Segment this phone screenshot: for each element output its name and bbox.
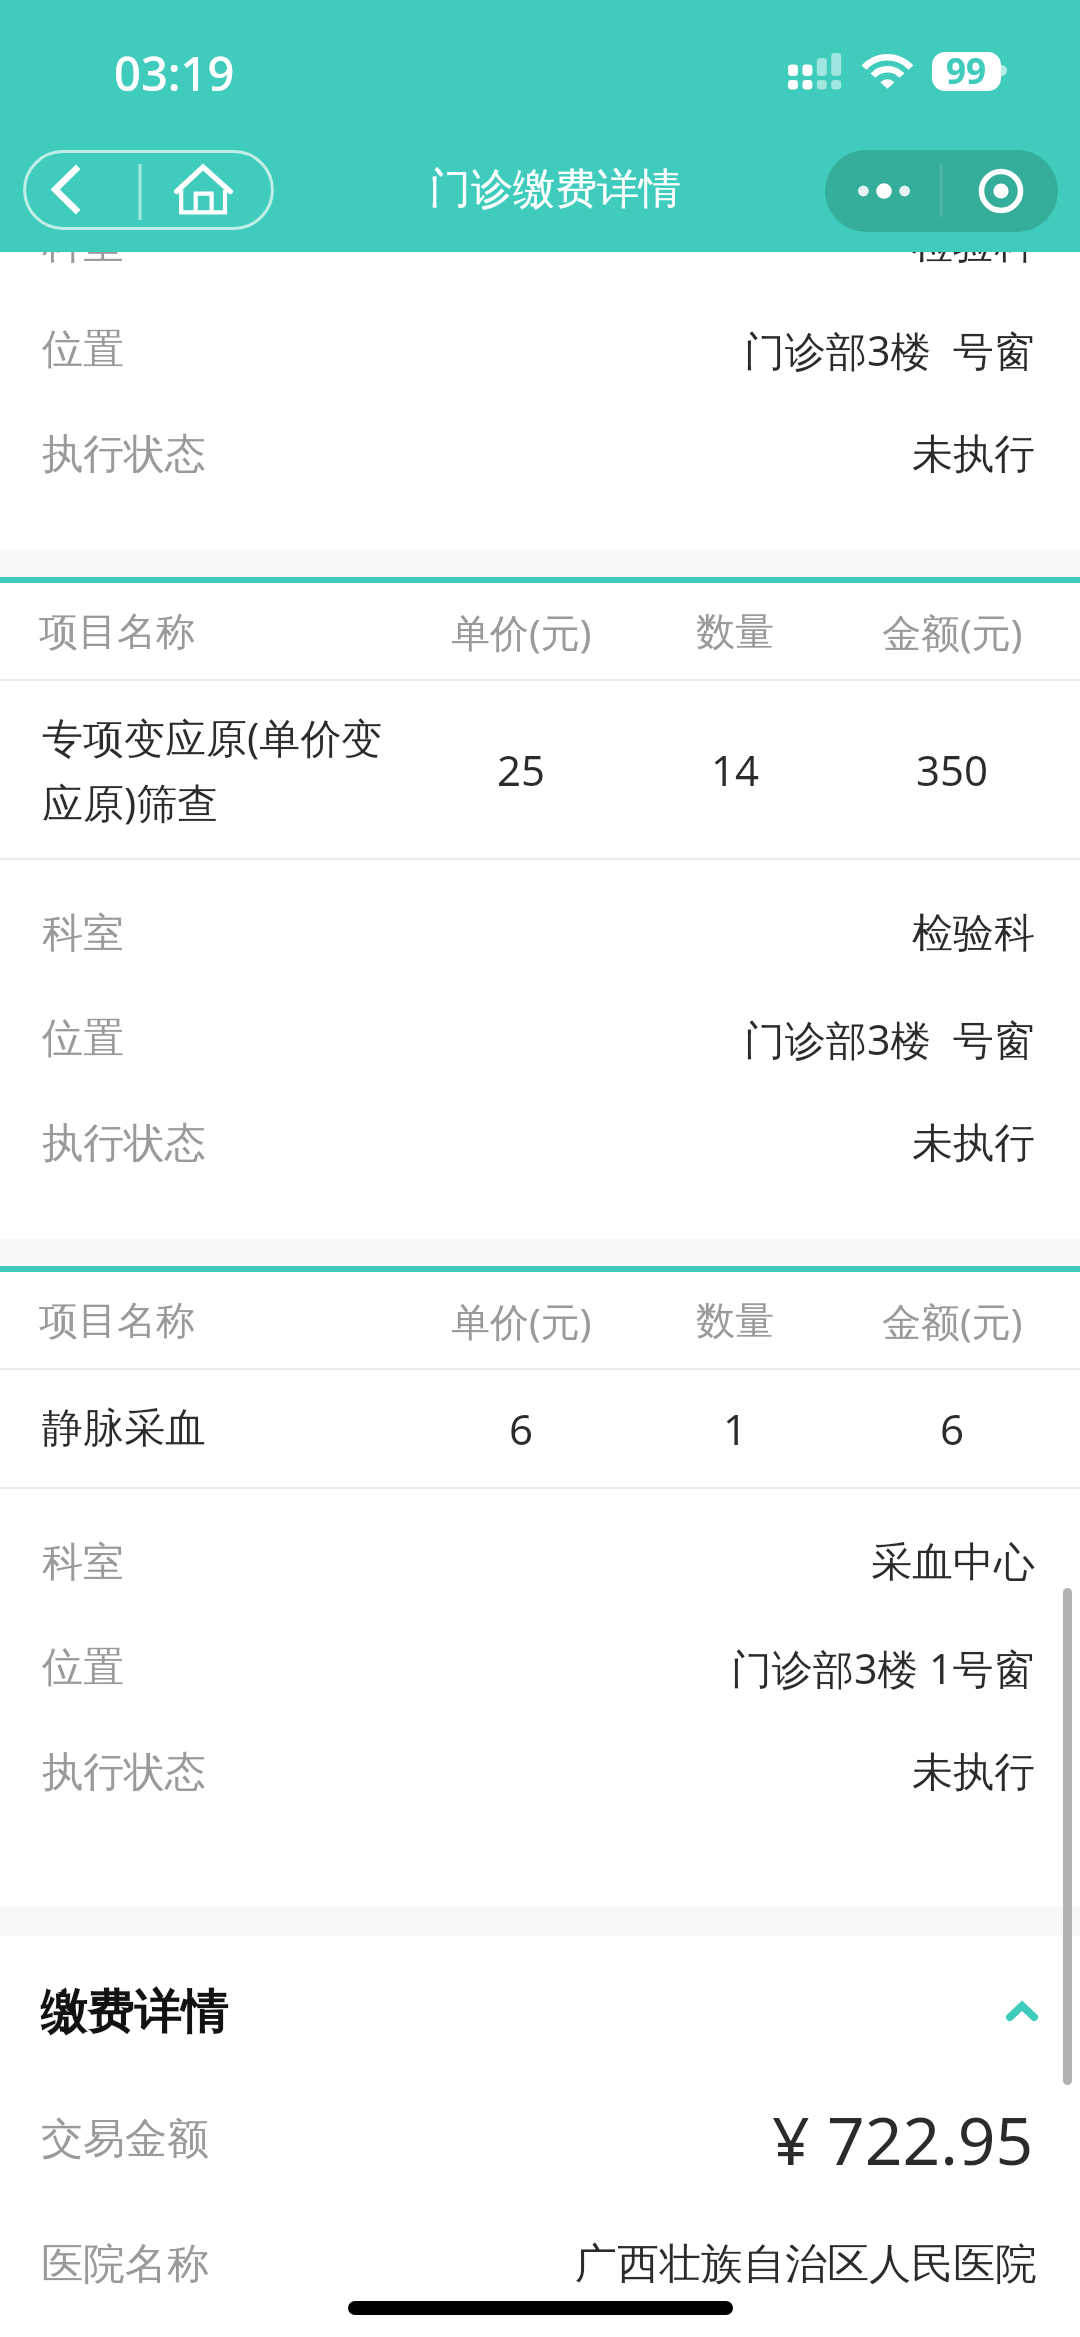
staticText: 6	[940, 1400, 965, 1457]
staticText: 交易金额	[41, 2113, 209, 2166]
staticText: 350	[916, 741, 989, 798]
button[interactable]: 执行状态	[0, 402, 1080, 507]
staticText: 执行状态	[42, 1747, 206, 1799]
staticText: 位置	[42, 324, 124, 376]
staticText: 门诊部3楼 号窗	[744, 1011, 1035, 1067]
staticText: 单价(元)	[451, 1294, 592, 1347]
button[interactable]: 执行状态	[0, 1091, 1080, 1196]
staticText: 缴费详情	[40, 1983, 228, 2042]
staticText: 25	[497, 741, 546, 798]
button[interactable]: 科室	[0, 881, 1080, 986]
staticText: 数量	[696, 607, 774, 656]
button[interactable]: Close	[941, 150, 1058, 232]
staticText: 门诊缴费详情	[429, 163, 681, 216]
staticText: 位置	[42, 1013, 124, 1065]
staticText: 科室	[42, 908, 124, 960]
button[interactable]: 位置	[0, 986, 1080, 1091]
staticText: 金额(元)	[882, 1294, 1023, 1347]
staticText: 门诊部3楼 号窗	[744, 322, 1035, 378]
button[interactable]: 位置	[0, 1615, 1080, 1720]
staticText: 科室	[42, 1537, 124, 1589]
staticText: 未执行	[912, 1747, 1035, 1799]
staticText: 金额(元)	[882, 605, 1023, 658]
staticText: ¥ 722.95	[772, 2094, 1034, 2184]
staticText: 未执行	[912, 1118, 1035, 1170]
button[interactable]: Back	[23, 150, 140, 230]
staticText: 项目名称	[39, 1296, 195, 1345]
staticText: 项目名称	[39, 607, 195, 656]
button[interactable]: More	[825, 150, 941, 232]
staticText: 99	[946, 52, 987, 86]
staticText: 门诊部3楼 1号窗	[731, 1640, 1035, 1696]
button[interactable]: 位置	[0, 297, 1080, 402]
staticText: 专项变应原(单价变应原)筛查	[42, 709, 394, 830]
staticText: 静脉采血	[42, 1403, 206, 1455]
staticText: 未执行	[912, 429, 1035, 481]
staticText: 采血中心	[871, 1537, 1035, 1589]
button[interactable]: 专项变应原(单价变应原)筛查	[0, 681, 1080, 858]
staticText: 广西壮族自治区人民医院	[575, 2238, 1037, 2291]
staticText: 位置	[42, 1642, 124, 1694]
staticText: 单价(元)	[451, 605, 592, 658]
staticText: 03:19	[114, 41, 235, 105]
button[interactable]: 执行状态	[0, 1720, 1080, 1825]
staticText: 数量	[696, 1296, 774, 1345]
button[interactable]: 静脉采血	[0, 1370, 1080, 1487]
staticText: 6	[509, 1400, 534, 1457]
staticText: 检验科	[912, 219, 1035, 271]
staticText: 1	[723, 1400, 748, 1457]
staticText: 14	[711, 741, 760, 798]
button[interactable]: 科室	[0, 1510, 1080, 1615]
staticText: 检验科	[912, 908, 1035, 960]
staticText: 医院名称	[41, 2238, 209, 2291]
staticText: 执行状态	[42, 429, 206, 481]
staticText: 执行状态	[42, 1118, 206, 1170]
button[interactable]: 缴费详情	[0, 1936, 1080, 2088]
staticText: 科室	[42, 219, 124, 271]
button[interactable]: 科室	[0, 192, 1080, 297]
button[interactable]: Home	[140, 150, 274, 230]
